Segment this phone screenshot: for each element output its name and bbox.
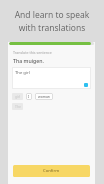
staticText: The bbox=[15, 104, 21, 109]
button[interactable]: I bbox=[26, 93, 32, 100]
staticText: The girl bbox=[15, 70, 30, 76]
button[interactable]: girl bbox=[12, 93, 23, 100]
button[interactable]: woman bbox=[35, 93, 53, 100]
staticText: with translations bbox=[0, 22, 104, 34]
staticText: Tha muigen. bbox=[13, 57, 44, 64]
staticText: Translate this sentence bbox=[13, 50, 52, 55]
button[interactable]: The girl bbox=[12, 67, 91, 89]
staticText: Confirm bbox=[43, 168, 60, 174]
button[interactable]: Hint bbox=[84, 83, 88, 87]
staticText: I bbox=[28, 94, 30, 99]
button[interactable]: Confirm bbox=[13, 165, 90, 177]
staticText: girl bbox=[15, 94, 21, 99]
staticText: woman bbox=[38, 94, 50, 99]
button[interactable]: The bbox=[12, 103, 23, 110]
staticText: And learn to speak bbox=[0, 9, 104, 21]
